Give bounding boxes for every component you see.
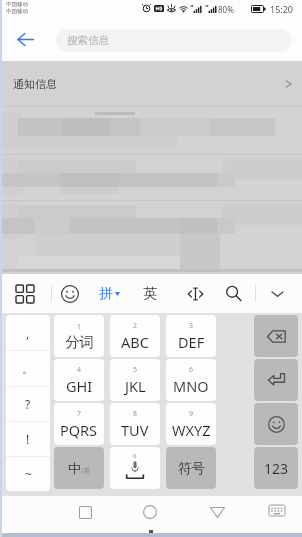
button[interactable]: 4	[54, 359, 104, 401]
staticText: DEF	[178, 332, 205, 352]
button[interactable]: Search	[215, 274, 251, 313]
button[interactable]: 符号	[166, 447, 216, 489]
button[interactable]: Move cursor	[177, 274, 213, 313]
staticText: 中国移动	[6, 8, 28, 15]
button[interactable]: ,	[6, 315, 50, 350]
staticText: TUV	[121, 420, 149, 440]
staticText: 0	[133, 452, 137, 460]
staticText: ?	[25, 396, 31, 412]
button[interactable]	[0, 155, 302, 200]
staticText: 15:20	[270, 3, 294, 15]
button[interactable]: Back	[204, 499, 230, 525]
staticText: /英	[81, 466, 91, 476]
button[interactable]: 5	[110, 359, 160, 401]
staticText: ,	[26, 325, 30, 341]
staticText: PQRS	[60, 420, 98, 440]
staticText: 4	[77, 365, 82, 375]
button[interactable]: Enter	[254, 359, 298, 401]
button[interactable]: 3	[166, 315, 216, 357]
button[interactable]: 中	[54, 447, 104, 489]
button[interactable]: Hide keyboard	[264, 499, 290, 521]
button[interactable]: 7	[54, 403, 104, 445]
button[interactable]: ~	[6, 457, 50, 491]
button[interactable]: 2	[110, 315, 160, 357]
staticText: 英	[143, 285, 157, 303]
staticText: WXYZ	[172, 420, 211, 440]
staticText: 80%	[218, 4, 234, 15]
staticText: GHI	[66, 376, 93, 396]
staticText: 分词	[65, 333, 94, 351]
button[interactable]: 英	[132, 274, 168, 313]
button[interactable]: Emoji	[254, 403, 298, 445]
button[interactable]: Voice input	[110, 447, 160, 489]
staticText: 5	[133, 365, 138, 375]
button[interactable]: Keyboard layouts	[5, 274, 44, 313]
staticText: !	[26, 431, 30, 447]
staticText: 通知信息	[13, 77, 57, 91]
button[interactable]: ?	[6, 387, 50, 421]
button[interactable]: 123	[254, 447, 298, 489]
button[interactable]: Back	[13, 30, 37, 49]
button[interactable]: Home	[137, 499, 163, 525]
staticText: MNO	[173, 376, 209, 396]
button[interactable]: 1	[54, 315, 104, 357]
staticText: JKL	[125, 376, 146, 396]
staticText: 123	[264, 459, 289, 478]
button[interactable]: 搜索信息	[56, 29, 292, 52]
staticText: 中国移动	[6, 1, 28, 8]
button[interactable]: 6	[166, 359, 216, 401]
staticText: ABC	[121, 332, 149, 352]
button[interactable]: 拼	[90, 274, 128, 313]
button[interactable]: Backspace	[254, 315, 298, 357]
staticText: 1	[77, 322, 82, 332]
button[interactable]: 。	[6, 351, 50, 386]
button[interactable]: 通知信息	[0, 61, 302, 106]
button[interactable]: Recents	[72, 499, 98, 525]
staticText: 7	[77, 409, 82, 419]
button[interactable]	[0, 201, 302, 274]
staticText: 拼	[99, 285, 113, 303]
button[interactable]: 8	[110, 403, 160, 445]
staticText: 2	[133, 321, 138, 331]
staticText: 8	[133, 409, 138, 419]
staticText: 。	[22, 361, 34, 376]
staticText: 3	[189, 321, 194, 331]
button[interactable]: Emoji	[52, 274, 87, 313]
button[interactable]: Hide keyboard	[258, 274, 296, 313]
button[interactable]	[0, 107, 302, 154]
staticText: 中	[68, 460, 81, 476]
button[interactable]: 9	[166, 403, 216, 445]
button[interactable]: !	[6, 422, 50, 456]
staticText: ~	[25, 466, 32, 482]
staticText: 9	[189, 409, 194, 419]
staticText: 搜索信息	[67, 34, 109, 47]
staticText: 6	[189, 365, 194, 375]
staticText: 符号	[178, 460, 205, 477]
